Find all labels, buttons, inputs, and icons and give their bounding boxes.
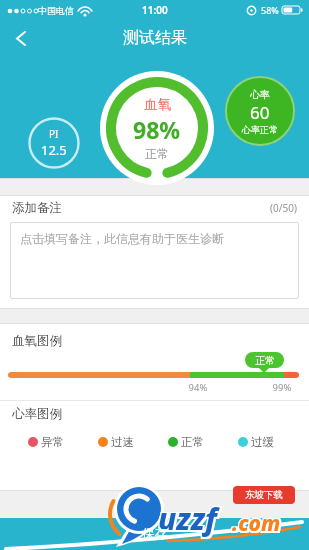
staticText: 正常 [255, 354, 275, 367]
staticText: 98% [133, 114, 181, 145]
staticText: .com [231, 508, 280, 537]
staticText: uzzf [160, 500, 219, 541]
staticText: (0/50) [270, 201, 297, 215]
staticText: .com [234, 511, 283, 540]
staticText: uzzf [157, 497, 216, 538]
staticText: .com [231, 511, 280, 540]
staticText: .com [232, 509, 281, 538]
staticText: 58% [261, 4, 279, 16]
staticText: PI [49, 127, 59, 141]
staticText: 东坡下载 [245, 489, 283, 501]
staticText: 正常 [145, 146, 169, 161]
staticText: 60 [250, 101, 270, 124]
staticText: uzzf [157, 500, 216, 541]
button[interactable]: 点击填写备注，此信息有助于医生诊断 [10, 222, 299, 299]
staticText: 心率图例 [12, 406, 62, 422]
staticText: uzzf [158, 498, 217, 539]
staticText: 11:00 [142, 3, 168, 17]
staticText: uzzf [160, 497, 219, 538]
staticText: 正常 [181, 435, 204, 449]
staticText: 测试结果 [123, 28, 187, 48]
staticText: 血氧 [144, 96, 171, 113]
button[interactable] [6, 23, 36, 53]
staticText: 过缓 [251, 435, 274, 449]
staticText: 心率 [250, 88, 270, 101]
button[interactable] [0, 518, 309, 550]
staticText: 点击填写备注，此信息有助于医生诊断 [20, 231, 224, 246]
staticText: 94% [183, 381, 213, 394]
staticText: 99% [267, 381, 297, 394]
staticText: 异常 [41, 435, 64, 449]
staticText: 过速 [111, 435, 134, 449]
staticText: .com [234, 508, 283, 537]
staticText: 血氧图例 [12, 333, 62, 349]
staticText: 12.5 [41, 141, 67, 159]
staticText: 添加备注 [12, 200, 62, 216]
staticText: 中国电信 [38, 5, 74, 16]
staticText: 保存 [142, 526, 167, 542]
staticText: 心率正常 [242, 124, 278, 135]
